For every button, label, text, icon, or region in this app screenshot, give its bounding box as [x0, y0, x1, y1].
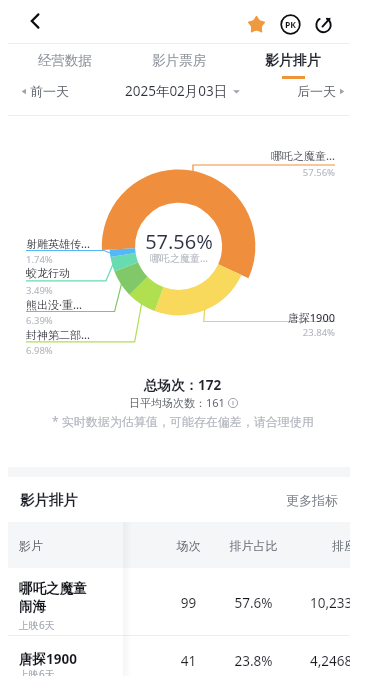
- staticText: 57.6%: [221, 594, 286, 612]
- staticText: 影片排片: [20, 491, 78, 509]
- staticText: 2025年02月03日: [125, 82, 228, 100]
- button[interactable]: Favorite: [243, 11, 270, 38]
- button[interactable]: 影片票房: [122, 44, 236, 82]
- staticText: 99: [156, 594, 221, 612]
- staticText: 更多指标: [286, 492, 338, 508]
- staticText: 哪吒之魔童...: [119, 251, 239, 265]
- staticText: 场次: [156, 538, 221, 553]
- staticText: 射雕英雄传...: [26, 236, 90, 251]
- staticText: 6.39%: [26, 314, 53, 327]
- staticText: 23.8%: [221, 652, 286, 670]
- staticText: 41: [156, 652, 221, 670]
- staticText: 排片占比: [221, 538, 286, 553]
- staticText: 唐探1900: [235, 310, 335, 325]
- button[interactable]: 哪吒之魔童 闹海: [8, 568, 350, 635]
- staticText: 哪吒之魔童 闹海: [19, 580, 87, 615]
- staticText: 影片排片: [265, 52, 321, 70]
- staticText: 排座率: [332, 538, 350, 553]
- button[interactable]: PK comparison: [277, 11, 304, 38]
- button[interactable]: Share: [310, 11, 337, 38]
- staticText: 1.74%: [26, 253, 53, 266]
- staticText: 上映6天: [19, 667, 55, 676]
- staticText: 影片票房: [152, 52, 206, 69]
- staticText: 哪吒之魔童...: [235, 148, 335, 163]
- staticText: 4,2468: [310, 652, 350, 670]
- staticText: 3.49%: [26, 284, 53, 297]
- button[interactable]: 影片排片: [8, 491, 78, 509]
- staticText: 经营数据: [38, 52, 92, 69]
- button[interactable]: 前一天: [20, 73, 69, 109]
- staticText: 蛟龙行动: [26, 266, 70, 280]
- button[interactable]: 唐探1900: [8, 636, 350, 676]
- button[interactable]: 影片排片: [236, 44, 350, 82]
- staticText: 总场次：172: [144, 376, 222, 394]
- staticText: 57.56%: [235, 166, 335, 179]
- staticText: * 实时数据为估算值，可能存在偏差，请合理使用: [52, 413, 314, 429]
- staticText: 10,2336: [310, 594, 350, 612]
- button[interactable]: 经营数据: [8, 44, 122, 82]
- staticText: 熊出没·重...: [26, 297, 82, 312]
- staticText: 唐探1900: [19, 650, 77, 668]
- staticText: 前一天: [30, 83, 69, 99]
- button[interactable]: 后一天: [297, 73, 346, 109]
- staticText: 后一天: [297, 83, 336, 99]
- button[interactable]: Back: [20, 6, 50, 36]
- staticText: 6.98%: [26, 344, 53, 357]
- staticText: PK: [285, 19, 297, 31]
- staticText: 23.84%: [235, 326, 335, 339]
- staticText: 上映6天: [19, 618, 55, 632]
- button[interactable]: 2025年02月03日: [125, 73, 241, 109]
- staticText: 封神第二部...: [26, 327, 90, 342]
- staticText: 日平均场次数：161: [129, 395, 225, 410]
- staticText: 57.56%: [119, 228, 239, 255]
- button[interactable]: 更多指标: [286, 492, 350, 508]
- staticText: 影片: [19, 538, 43, 553]
